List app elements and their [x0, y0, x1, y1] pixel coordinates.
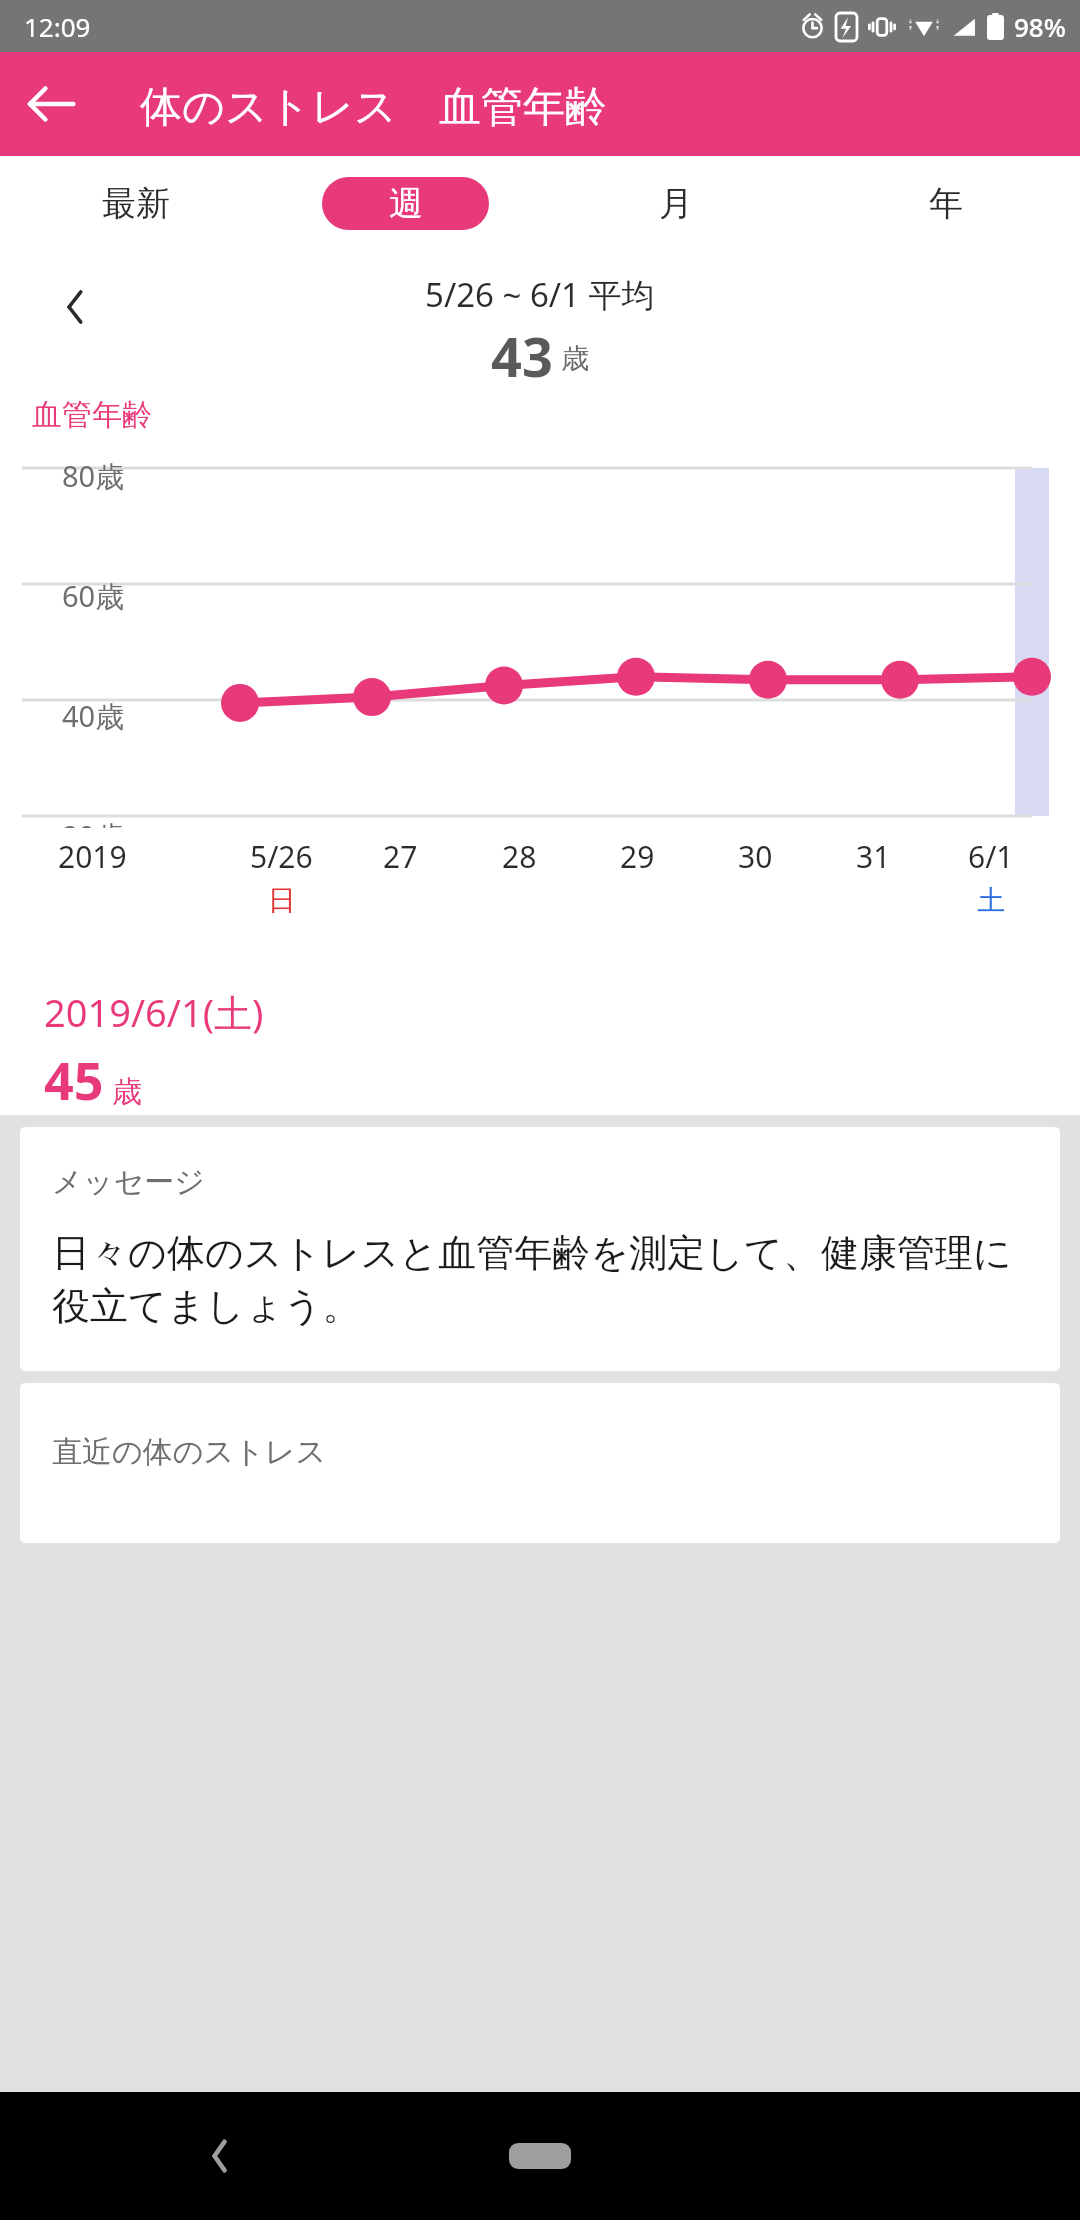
staticText: 2019: [58, 836, 127, 877]
staticText: 45: [44, 1044, 104, 1115]
staticText: 血管年齢: [32, 396, 152, 434]
staticText: 歳: [112, 1073, 142, 1111]
staticText: 週: [389, 182, 423, 225]
staticText: メッセージ: [52, 1163, 205, 1201]
staticText: 月: [659, 182, 693, 225]
staticText: 29: [620, 836, 655, 877]
button[interactable]: 直近の体のストレス: [20, 1383, 1060, 1543]
staticText: 30: [738, 836, 773, 877]
button[interactable]: Home: [509, 2143, 571, 2169]
staticText: 2019/6/1(土): [44, 986, 264, 1038]
staticText: 80歳: [62, 456, 125, 496]
button[interactable]: 週: [322, 177, 489, 230]
staticText: 土: [977, 883, 1005, 918]
staticText: 20歳: [62, 816, 125, 828]
button[interactable]: メッセージ: [20, 1127, 1060, 1371]
staticText: 日: [268, 883, 296, 918]
button[interactable]: Back: [185, 2120, 257, 2192]
staticText: 28: [502, 836, 537, 877]
staticText: 98%: [1014, 9, 1066, 44]
button[interactable]: Previous period: [46, 278, 104, 336]
staticText: 最新: [102, 182, 170, 225]
button[interactable]: 月: [592, 177, 759, 230]
staticText: 5/26 ~ 6/1 平均: [425, 272, 655, 317]
staticText: 体のストレス 血管年齢: [140, 76, 607, 133]
staticText: 40歳: [62, 696, 125, 736]
staticText: 6/1: [968, 836, 1014, 877]
staticText: 歳: [561, 341, 589, 376]
staticText: 27: [383, 836, 418, 877]
staticText: 日々の体のストレスと血管年齢を測定して、健康管理に役立てましょう。: [52, 1229, 1034, 1331]
button[interactable]: 年: [862, 177, 1029, 230]
staticText: 60歳: [62, 576, 125, 616]
staticText: 年: [929, 182, 963, 225]
staticText: 43: [491, 319, 553, 382]
staticText: 5/26: [250, 836, 313, 877]
button[interactable]: Back: [20, 73, 82, 135]
button[interactable]: 最新: [52, 177, 219, 230]
staticText: 直近の体のストレス: [52, 1433, 327, 1471]
staticText: 31: [856, 836, 891, 877]
staticText: 12:09: [24, 9, 91, 44]
